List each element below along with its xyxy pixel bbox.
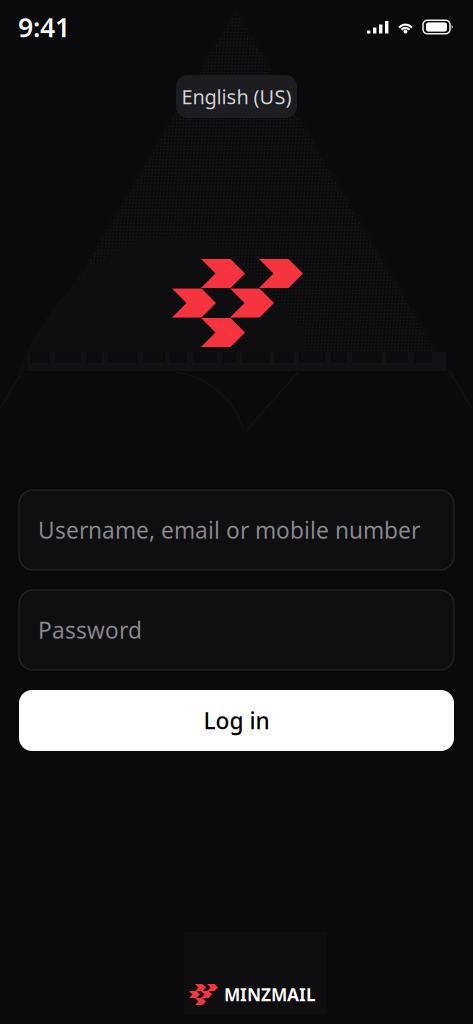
staticText: Password	[38, 615, 142, 645]
staticText: Username, email or mobile number	[38, 515, 420, 545]
staticText: 9:41	[18, 9, 70, 45]
staticText: English (US)	[181, 83, 291, 110]
staticText: Log in	[203, 705, 269, 735]
button[interactable]: Log in	[19, 690, 454, 751]
button[interactable]: Password	[19, 590, 454, 670]
button[interactable]: Username, email or mobile number	[19, 490, 454, 570]
staticText: MINZMAIL	[224, 983, 316, 1006]
button[interactable]: English (US)	[176, 75, 297, 118]
